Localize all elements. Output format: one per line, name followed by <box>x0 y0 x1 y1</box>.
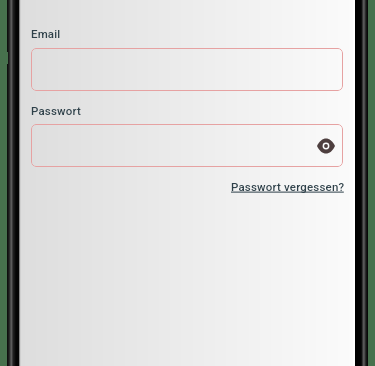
staticText: Passwort <box>31 104 81 117</box>
button[interactable] <box>31 48 343 91</box>
button[interactable]: Passwort anzeigen <box>312 132 340 160</box>
staticText: Email <box>31 27 61 40</box>
button[interactable]: Passwort anzeigen <box>31 124 343 167</box>
button[interactable]: Passwort vergessen? <box>231 180 345 193</box>
